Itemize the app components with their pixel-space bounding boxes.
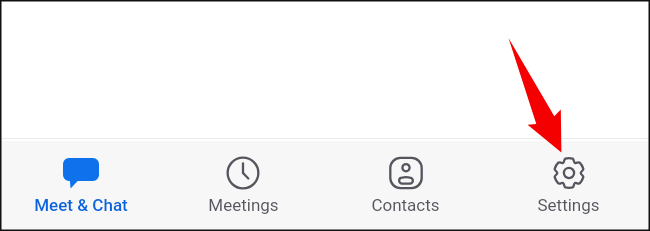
other: Meet and Chat — [63, 155, 99, 191]
staticText: Meet & Chat — [34, 195, 128, 215]
button[interactable]: Contacts — [324, 141, 487, 231]
other: Contacts — [388, 155, 424, 191]
staticText: Meetings — [208, 195, 279, 215]
staticText: Contacts — [371, 195, 440, 215]
button[interactable]: Meet and Chat — [0, 141, 162, 231]
other: Meetings — [225, 155, 261, 191]
button[interactable]: Settings — [487, 141, 650, 231]
other: Settings — [551, 155, 587, 191]
button[interactable]: Meetings — [162, 141, 324, 231]
staticText: Settings — [537, 195, 600, 215]
